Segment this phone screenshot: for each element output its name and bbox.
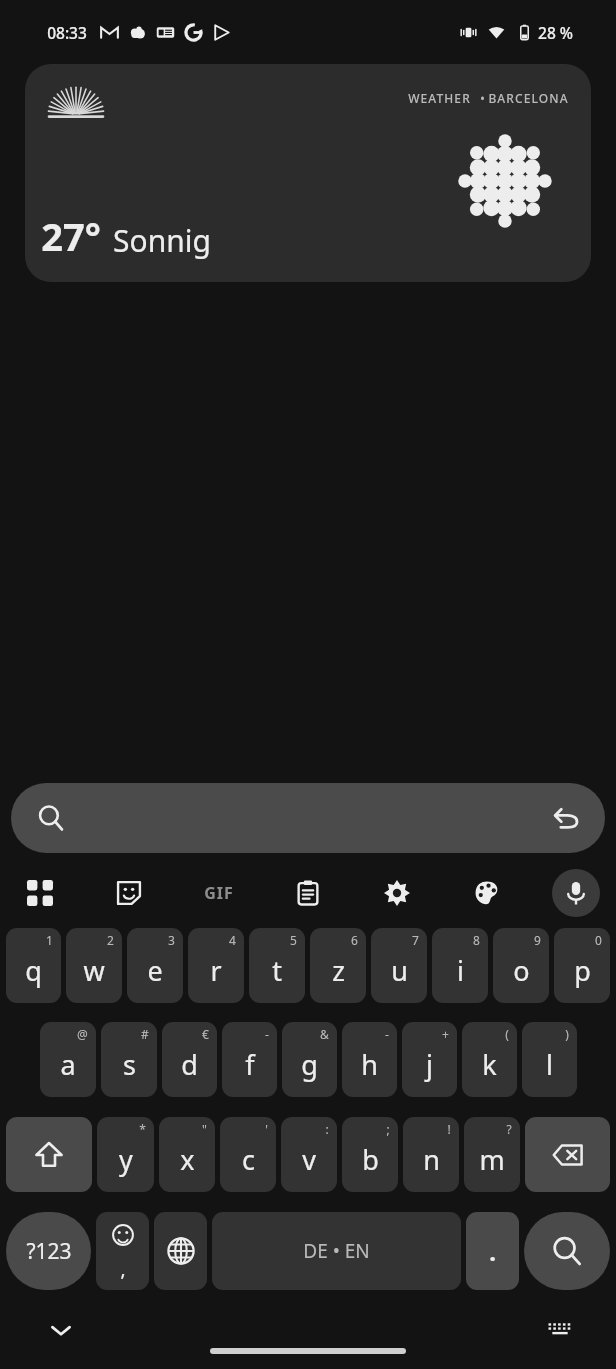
- button[interactable]: Settings: [373, 869, 421, 917]
- button[interactable]: ': [220, 1117, 276, 1192]
- button[interactable]: Emoji: [96, 1212, 149, 1290]
- staticText: q: [25, 952, 42, 989]
- staticText: !: [447, 1121, 451, 1137]
- button[interactable]: ?123: [6, 1212, 91, 1290]
- staticText: f: [245, 1046, 255, 1083]
- button[interactable]: Switch keyboard: [540, 1310, 580, 1350]
- button[interactable]: :: [281, 1117, 337, 1192]
- button[interactable]: Voice input: [552, 869, 600, 917]
- staticText: j: [426, 1046, 433, 1083]
- staticText: @: [77, 1026, 88, 1042]
- staticText: ,: [120, 1256, 126, 1282]
- button[interactable]: +: [402, 1022, 457, 1097]
- button[interactable]: 9: [493, 928, 549, 1003]
- button[interactable]: 5: [249, 928, 305, 1003]
- button[interactable]: 2: [66, 928, 122, 1003]
- button[interactable]: &: [282, 1022, 337, 1097]
- button[interactable]: ;: [342, 1117, 398, 1192]
- staticText: a: [60, 1046, 76, 1083]
- button[interactable]: (: [462, 1022, 517, 1097]
- staticText: 7: [412, 932, 419, 948]
- button[interactable]: *: [97, 1117, 154, 1192]
- button[interactable]: Apps: [16, 869, 64, 917]
- staticText: 3: [168, 932, 175, 948]
- button[interactable]: 7: [371, 928, 427, 1003]
- staticText: l: [546, 1046, 553, 1083]
- staticText: ): [565, 1026, 569, 1042]
- staticText: *: [139, 1121, 146, 1137]
- staticText: b: [362, 1141, 379, 1178]
- staticText: 9: [534, 932, 541, 948]
- staticText: s: [123, 1046, 136, 1083]
- staticText: 4: [229, 932, 236, 948]
- button[interactable]: WEATHER: [25, 64, 591, 282]
- staticText: 6: [351, 932, 358, 948]
- staticText: •: [471, 90, 488, 106]
- button[interactable]: Stickers: [105, 869, 153, 917]
- staticText: 0: [595, 932, 602, 948]
- staticText: h: [361, 1046, 378, 1083]
- button[interactable]: 4: [188, 928, 244, 1003]
- staticText: i: [457, 952, 464, 989]
- button[interactable]: !: [403, 1117, 459, 1192]
- staticText: m: [479, 1141, 505, 1178]
- button[interactable]: 3: [127, 928, 183, 1003]
- staticText: .: [489, 1235, 496, 1268]
- staticText: 5: [290, 932, 297, 948]
- button[interactable]: €: [162, 1022, 217, 1097]
- staticText: u: [391, 952, 408, 989]
- staticText: -: [265, 1026, 269, 1042]
- button[interactable]: #: [101, 1022, 157, 1097]
- button[interactable]: ): [522, 1022, 577, 1097]
- staticText: d: [181, 1046, 198, 1083]
- staticText: DE • EN: [303, 1238, 370, 1264]
- staticText: t: [272, 952, 282, 989]
- button[interactable]: DE • EN: [212, 1212, 461, 1290]
- button[interactable]: GIF: [195, 869, 243, 917]
- staticText: e: [147, 952, 163, 989]
- staticText: 1: [46, 932, 53, 948]
- button[interactable]: 0: [554, 928, 610, 1003]
- button[interactable]: -: [342, 1022, 397, 1097]
- staticText: -: [385, 1026, 389, 1042]
- button[interactable]: Change language: [154, 1212, 207, 1290]
- staticText: 08:33: [47, 22, 87, 43]
- button[interactable]: 8: [432, 928, 488, 1003]
- button[interactable]: ?: [464, 1117, 520, 1192]
- staticText: g: [301, 1046, 318, 1083]
- staticText: 28 %: [538, 22, 573, 43]
- staticText: €: [202, 1026, 209, 1042]
- staticText: c: [242, 1141, 255, 1178]
- staticText: r: [210, 952, 222, 989]
- button[interactable]: @: [40, 1022, 96, 1097]
- button[interactable]: ": [159, 1117, 215, 1192]
- button[interactable]: 1: [6, 928, 61, 1003]
- staticText: ?123: [26, 1237, 72, 1266]
- staticText: &: [320, 1026, 329, 1042]
- staticText: ?: [506, 1121, 512, 1137]
- staticText: ': [265, 1121, 268, 1137]
- button[interactable]: Clipboard: [284, 869, 332, 917]
- staticText: 2: [107, 932, 114, 948]
- staticText: p: [574, 952, 591, 989]
- staticText: z: [332, 952, 345, 989]
- staticText: WEATHER: [408, 90, 471, 106]
- button[interactable]: Backspace: [525, 1117, 610, 1192]
- staticText: 27°: [41, 210, 101, 262]
- button[interactable]: .: [466, 1212, 519, 1290]
- staticText: v: [302, 1141, 316, 1178]
- staticText: x: [180, 1141, 195, 1178]
- staticText: o: [513, 952, 530, 989]
- staticText: 8: [473, 932, 480, 948]
- button[interactable]: Hide keyboard: [40, 1309, 82, 1351]
- button[interactable]: Search: [11, 783, 605, 853]
- button[interactable]: Themes: [463, 869, 511, 917]
- staticText: GIF: [204, 882, 234, 904]
- button[interactable]: Shift: [6, 1117, 92, 1192]
- staticText: y: [119, 1141, 133, 1178]
- button[interactable]: 6: [310, 928, 366, 1003]
- other: Search: [38, 805, 64, 831]
- button[interactable]: Search: [524, 1212, 610, 1290]
- button[interactable]: -: [222, 1022, 277, 1097]
- staticText: w: [83, 952, 105, 989]
